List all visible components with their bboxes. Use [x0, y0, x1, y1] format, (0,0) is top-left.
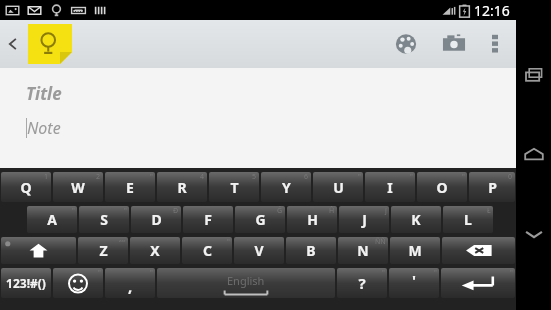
button[interactable]: Note — [27, 117, 61, 139]
button[interactable]: Shift — [1, 237, 76, 264]
staticText: " — [510, 268, 513, 278]
button[interactable]: L — [443, 206, 493, 233]
button[interactable]: M — [390, 237, 440, 264]
button[interactable]: U — [313, 172, 363, 202]
button[interactable]: W — [53, 172, 103, 202]
button[interactable]: Recent apps — [516, 58, 551, 93]
button[interactable]: E — [105, 172, 155, 202]
staticText: Ĝ — [277, 206, 283, 216]
staticText: ' — [412, 270, 416, 290]
button[interactable]: Enter — [441, 268, 515, 298]
staticText: 2 — [96, 172, 101, 182]
button[interactable]: Z — [78, 237, 128, 264]
staticText: ᶻᶻᶻ — [119, 237, 126, 247]
button[interactable]: T — [209, 172, 259, 202]
button[interactable]: B — [286, 237, 336, 264]
staticText: ĵ — [385, 206, 387, 216]
button[interactable]: K — [391, 206, 441, 233]
button[interactable]: C — [182, 237, 232, 264]
staticText: " — [124, 206, 127, 216]
staticText: P — [488, 178, 497, 197]
staticText: V — [254, 241, 264, 260]
staticText: Z — [99, 241, 108, 260]
button[interactable]: S — [79, 206, 129, 233]
staticText: Ð — [173, 206, 179, 216]
button[interactable]: Title — [26, 82, 62, 105]
staticText: 4 — [200, 172, 205, 182]
staticText: Y — [282, 178, 291, 197]
button[interactable]: V — [234, 237, 284, 264]
staticText: K — [411, 210, 421, 229]
staticText: B — [306, 241, 316, 260]
button[interactable]: Color palette — [382, 20, 430, 68]
staticText: X — [150, 241, 160, 260]
staticText: " — [72, 206, 75, 216]
staticText: M — [408, 241, 422, 260]
button[interactable]: O — [417, 172, 467, 202]
button[interactable]: Hide keyboard — [516, 216, 551, 251]
button[interactable]: Home — [516, 137, 551, 172]
button[interactable]: , — [105, 268, 155, 298]
staticText: H — [307, 210, 318, 229]
button[interactable]: J — [339, 206, 389, 233]
staticText: English — [227, 273, 265, 288]
staticText: 0 — [508, 172, 513, 182]
staticText: L — [464, 210, 472, 229]
staticText: Ł — [487, 206, 491, 216]
staticText: 5 — [252, 172, 257, 182]
button[interactable]: A — [27, 206, 77, 233]
button[interactable]: ' — [389, 268, 439, 298]
button[interactable]: ? — [337, 268, 387, 298]
button[interactable]: 123!#() — [1, 268, 51, 298]
staticText: " — [462, 172, 465, 182]
staticText: " — [227, 237, 230, 247]
staticText: ÑÑ — [375, 237, 386, 247]
staticText: " — [382, 268, 385, 278]
button[interactable]: H — [287, 206, 337, 233]
staticText: 6 — [304, 172, 309, 182]
button[interactable]: N — [338, 237, 388, 264]
button[interactable]: X — [130, 237, 180, 264]
staticText: " — [410, 172, 413, 182]
button[interactable]: G — [235, 206, 285, 233]
staticText: 1 — [44, 172, 49, 182]
staticText: Ĥ — [329, 206, 335, 216]
button[interactable]: P — [469, 172, 515, 202]
button[interactable]: I — [365, 172, 415, 202]
staticText: N — [357, 241, 369, 260]
staticText: " — [150, 268, 153, 278]
staticText: Q — [20, 178, 32, 197]
staticText: " — [150, 172, 153, 182]
staticText: T — [230, 178, 239, 197]
staticText: J — [362, 210, 367, 229]
button[interactable]: More options — [478, 20, 512, 68]
button[interactable]: F — [183, 206, 233, 233]
button[interactable]: Back — [0, 20, 26, 68]
staticText: W — [71, 178, 85, 197]
staticText: F — [204, 210, 212, 229]
button[interactable]: Y — [261, 172, 311, 202]
staticText: O — [436, 178, 448, 197]
button[interactable]: Note color — [26, 22, 74, 66]
staticText: " — [358, 172, 361, 182]
button[interactable]: R — [157, 172, 207, 202]
staticText: , — [128, 276, 133, 296]
staticText: ? — [358, 273, 366, 293]
staticText: 12:16 — [474, 1, 510, 20]
staticText: " — [98, 268, 101, 278]
staticText: A — [47, 210, 57, 229]
staticText: U — [333, 178, 344, 197]
staticText: R — [177, 178, 187, 197]
button[interactable]: Q — [1, 172, 51, 202]
button[interactable]: Backspace — [442, 237, 515, 264]
button[interactable]: Camera — [430, 20, 478, 68]
staticText: D — [151, 210, 162, 229]
staticText: E — [126, 178, 134, 197]
button[interactable]: Space — [157, 268, 335, 298]
button[interactable]: Emoji — [53, 268, 103, 298]
staticText: 123!#() — [6, 275, 46, 291]
staticText: C — [203, 241, 212, 260]
staticText: I — [387, 178, 393, 197]
staticText: S — [100, 210, 108, 229]
button[interactable]: D — [131, 206, 181, 233]
